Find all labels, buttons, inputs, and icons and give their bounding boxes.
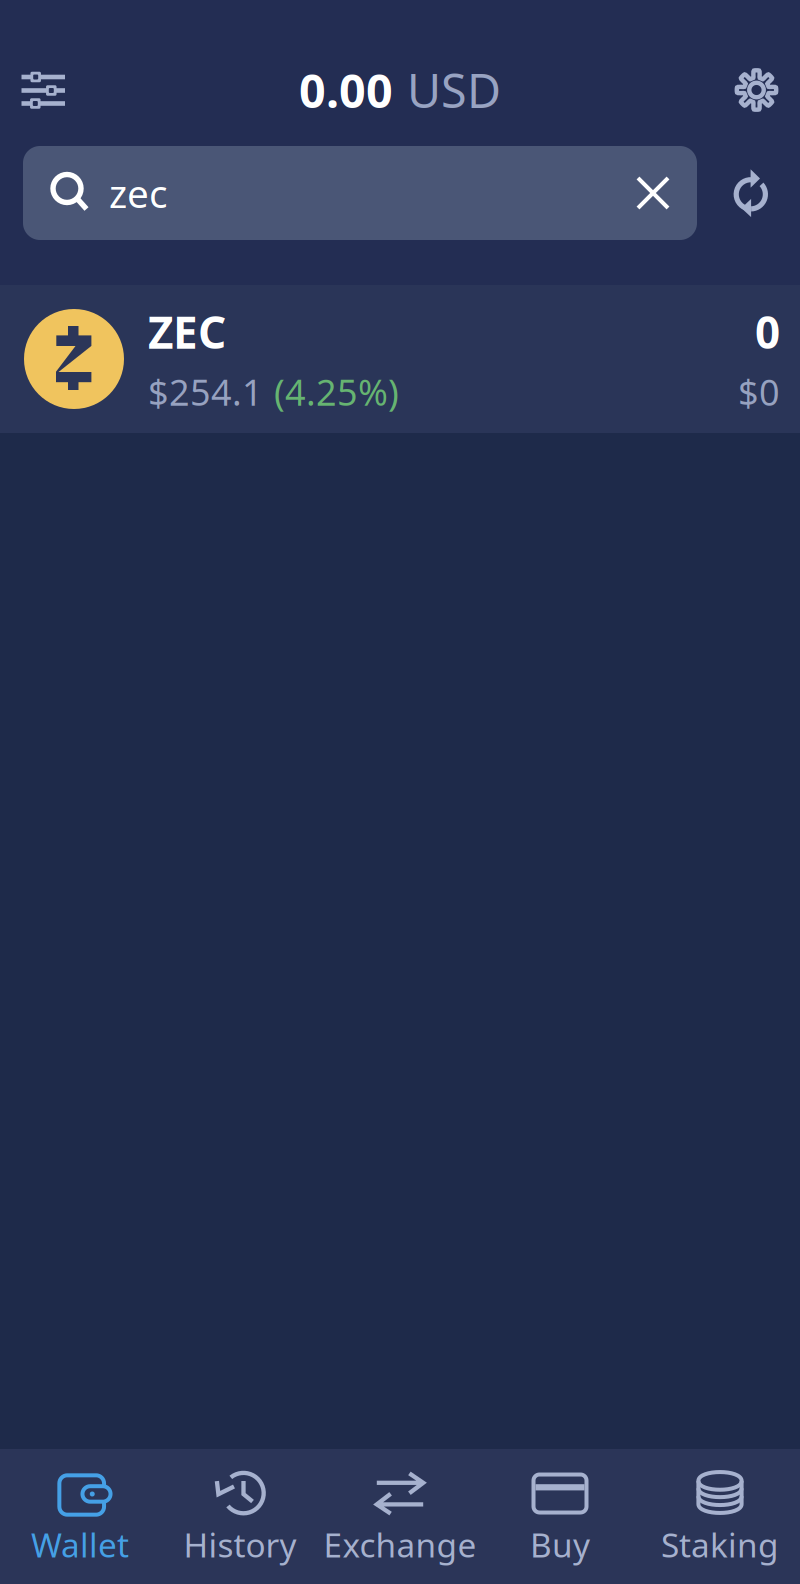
staticText: USD — [407, 59, 501, 121]
staticText: $254.1 — [148, 368, 263, 416]
staticText: (4.25%) — [274, 368, 399, 416]
button[interactable]: Filter — [0, 60, 87, 120]
button[interactable]: ZEC — [0, 285, 800, 433]
staticText: Staking — [661, 1522, 779, 1567]
staticText: 0 — [755, 302, 780, 361]
staticText: zec — [109, 167, 168, 219]
staticText: Wallet — [31, 1522, 129, 1567]
button[interactable]: Staking — [640, 1449, 800, 1584]
button[interactable]: Buy — [480, 1449, 640, 1584]
staticText: ZEC — [148, 302, 226, 361]
button[interactable]: Wallet — [0, 1449, 160, 1584]
button[interactable]: Clear search — [628, 168, 678, 218]
button[interactable]: Refresh — [727, 163, 775, 223]
staticText: $0 — [738, 368, 780, 416]
staticText: History — [183, 1522, 296, 1567]
staticText: 0.00 — [299, 59, 393, 121]
button[interactable]: History — [160, 1449, 320, 1584]
staticText: Buy — [530, 1522, 590, 1567]
staticText: Exchange — [323, 1522, 476, 1567]
button[interactable]: Exchange — [320, 1449, 480, 1584]
button[interactable]: Settings — [713, 60, 800, 120]
